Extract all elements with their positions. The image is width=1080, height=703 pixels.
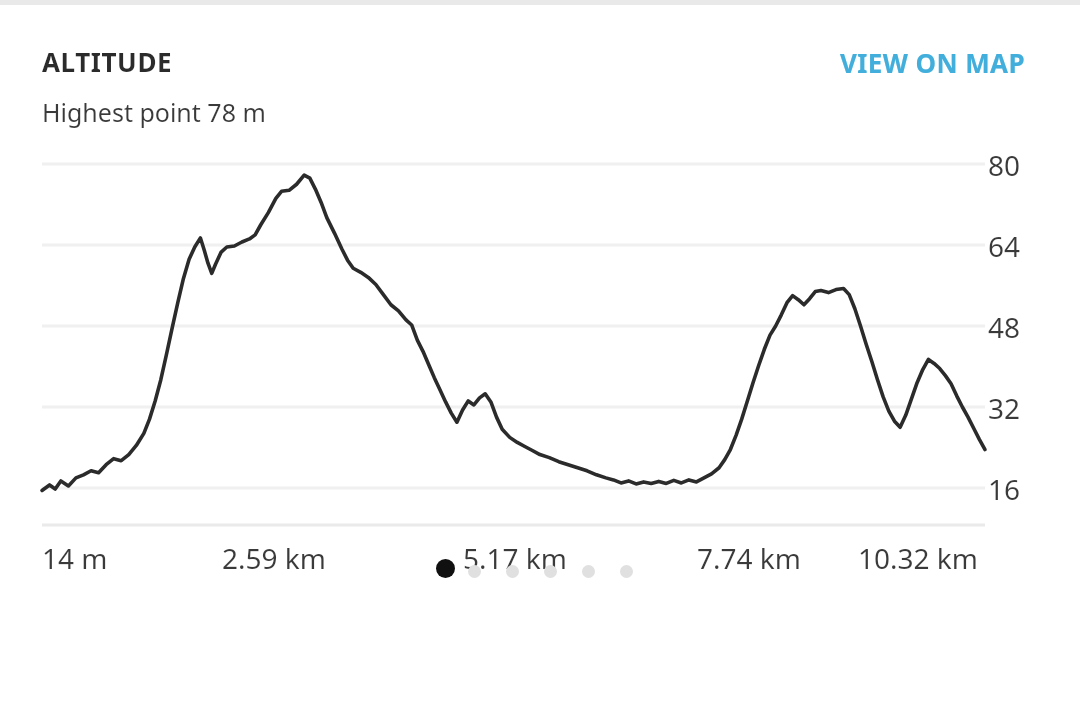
staticText: 2.59 km [222,539,326,577]
staticText: 48 [988,308,1021,346]
button[interactable]: Page 3 [493,559,531,583]
staticText: 14 m [42,539,108,577]
staticText: 32 [988,389,1021,427]
staticText: 80 [988,146,1021,184]
button[interactable]: VIEW ON MAP [838,44,1027,81]
button[interactable]: Page 6 [607,559,645,583]
staticText: 16 [988,470,1021,508]
button[interactable]: Page 4 [531,559,569,583]
staticText: ALTITUDE [42,44,173,79]
staticText: Highest point 78 m [42,95,266,129]
button[interactable]: Page 1, selected [436,559,455,578]
staticText: VIEW ON MAP [840,45,1025,80]
staticText: 7.74 km [697,539,801,577]
staticText: 64 [988,227,1021,265]
button[interactable]: Page 5 [569,559,607,583]
staticText: 5.17 km [463,539,567,577]
button[interactable]: Page 2 [455,559,493,583]
staticText: 10.32 km [858,539,978,577]
